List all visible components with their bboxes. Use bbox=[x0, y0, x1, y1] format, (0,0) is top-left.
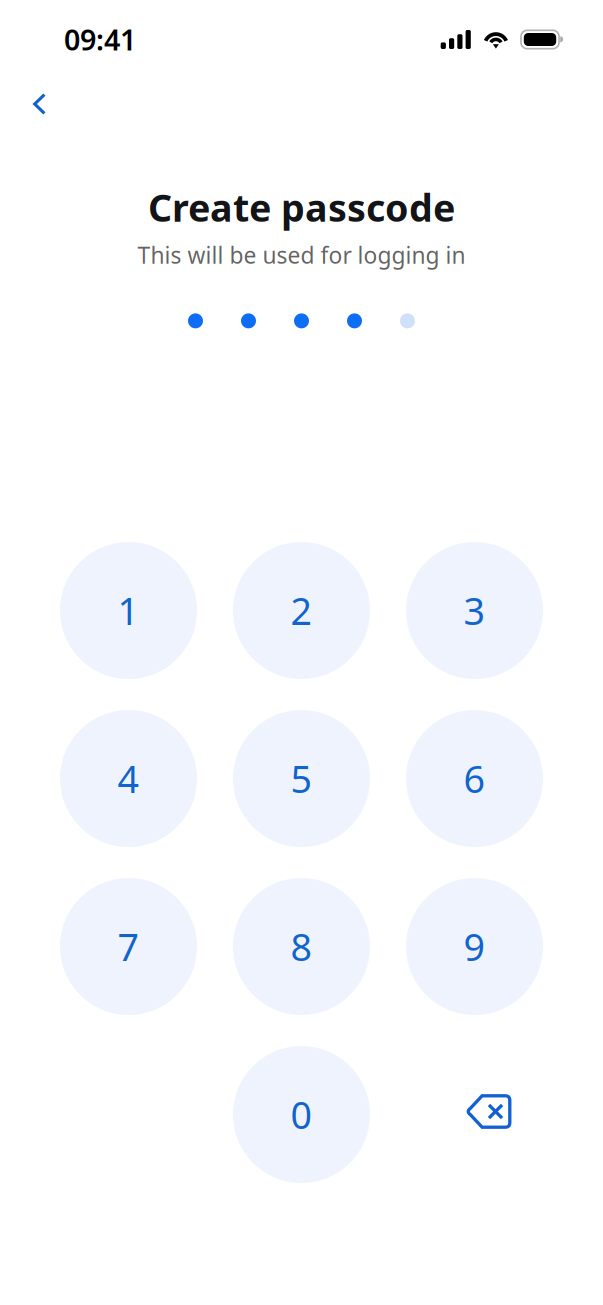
button[interactable]: 7 bbox=[60, 878, 197, 1015]
staticText: 3 bbox=[463, 585, 485, 636]
staticText: 9 bbox=[463, 921, 485, 972]
button[interactable]: 9 bbox=[406, 878, 543, 1015]
button[interactable]: 4 bbox=[60, 710, 197, 847]
button[interactable]: Delete bbox=[406, 1046, 543, 1183]
staticText: 2 bbox=[290, 585, 312, 636]
staticText: 7 bbox=[117, 921, 139, 972]
staticText: Create passcode bbox=[148, 182, 455, 233]
staticText: 5 bbox=[290, 753, 312, 804]
button[interactable]: 8 bbox=[233, 878, 370, 1015]
staticText: This will be used for logging in bbox=[137, 239, 465, 270]
button[interactable]: 0 bbox=[233, 1046, 370, 1183]
button[interactable]: 1 bbox=[60, 542, 197, 679]
button[interactable]: 3 bbox=[406, 542, 543, 679]
button[interactable]: 6 bbox=[406, 710, 543, 847]
staticText: 8 bbox=[290, 921, 312, 972]
staticText: 6 bbox=[463, 753, 485, 804]
button[interactable]: Back bbox=[17, 79, 62, 129]
staticText: 09:41 bbox=[64, 20, 136, 59]
staticText: 4 bbox=[117, 753, 139, 804]
button[interactable]: 5 bbox=[233, 710, 370, 847]
staticText: 0 bbox=[290, 1089, 312, 1140]
button[interactable]: 2 bbox=[233, 542, 370, 679]
staticText: 1 bbox=[117, 585, 139, 636]
